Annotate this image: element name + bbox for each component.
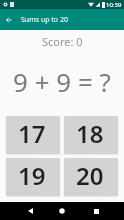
button[interactable]: Recents: [87, 202, 105, 220]
staticText: 20: [76, 159, 104, 192]
button[interactable]: 20: [64, 158, 118, 196]
button[interactable]: Back: [0, 11, 17, 28]
staticText: 17: [18, 117, 46, 150]
button[interactable]: 19: [6, 158, 60, 196]
staticText: 18: [76, 117, 104, 150]
staticText: 19: [18, 159, 46, 192]
staticText: 10:59: [106, 1, 122, 9]
staticText: Score: 0: [42, 34, 83, 49]
staticText: Sums up to 20: [21, 15, 68, 25]
button[interactable]: Back: [21, 202, 39, 220]
staticText: 9 + 9 = ?: [13, 64, 111, 99]
button[interactable]: 18: [64, 116, 118, 154]
button[interactable]: Home: [53, 202, 71, 220]
button[interactable]: 17: [6, 116, 60, 154]
